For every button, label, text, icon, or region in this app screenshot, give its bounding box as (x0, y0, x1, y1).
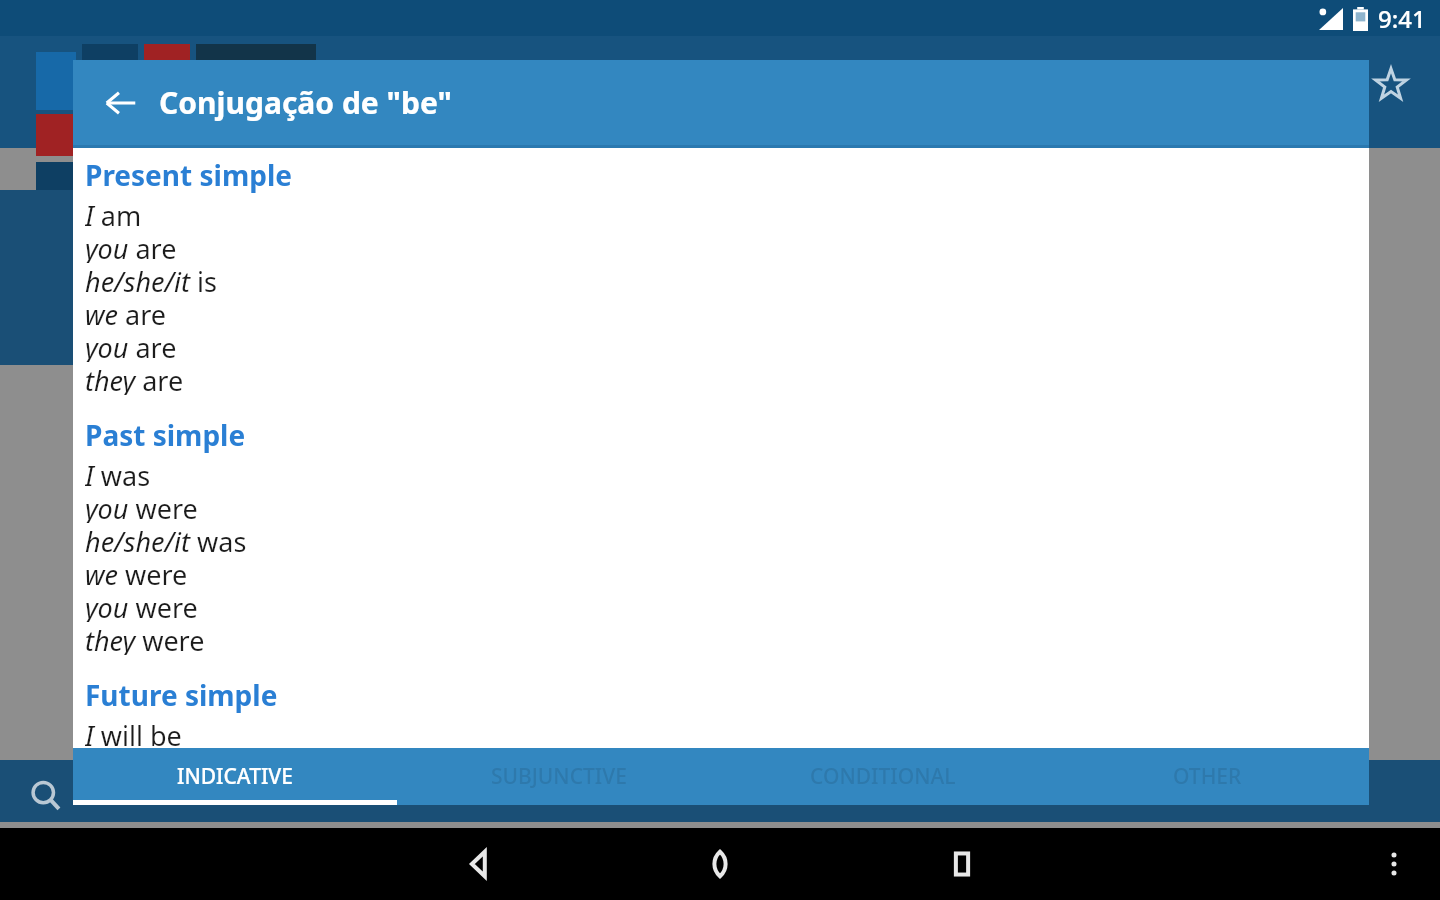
staticText: SUBJUNCTIVE (491, 762, 627, 791)
staticText: they are (85, 362, 184, 395)
staticText: he/she/it is (85, 263, 217, 296)
staticText: Past simple (85, 416, 246, 454)
button[interactable]: Home (672, 828, 768, 900)
staticText: he/she/it was (85, 523, 247, 556)
staticText: I will be (85, 717, 182, 748)
staticText: you were (85, 490, 198, 523)
button[interactable]: CONDITIONAL (721, 748, 1045, 805)
staticText: I was (85, 457, 151, 490)
button[interactable]: Search (22, 772, 70, 820)
staticText: you are (85, 329, 177, 362)
staticText: we were (85, 556, 188, 589)
staticText: they were (85, 622, 205, 655)
staticText: you were (85, 589, 198, 622)
button[interactable]: INDICATIVE (73, 748, 397, 805)
staticText: we are (85, 296, 166, 329)
staticText: Conjugação de "be" (159, 82, 452, 123)
staticText: 9:41 (1378, 2, 1426, 35)
staticText: OTHER (1173, 762, 1242, 791)
button[interactable]: SUBJUNCTIVE (397, 748, 721, 805)
staticText: I am (85, 197, 142, 230)
button[interactable]: Recents (914, 828, 1010, 900)
staticText: Future simple (85, 676, 278, 714)
button[interactable]: Back (93, 75, 149, 131)
staticText: you are (85, 230, 177, 263)
staticText: INDICATIVE (177, 762, 293, 791)
button[interactable]: Back (430, 828, 526, 900)
staticText: CONDITIONAL (810, 762, 956, 791)
button[interactable]: More options (1366, 836, 1422, 892)
button[interactable]: Favorite (1368, 62, 1414, 108)
staticText: Present simple (85, 156, 292, 194)
